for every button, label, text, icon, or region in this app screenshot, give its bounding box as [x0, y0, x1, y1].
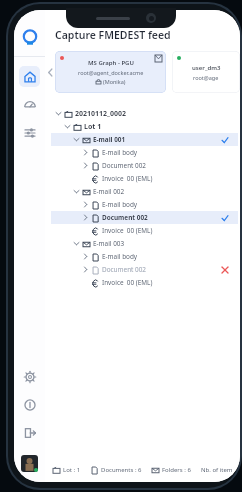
staticText: Invoice 00 (EML)	[102, 278, 153, 287]
button[interactable]: Logo	[20, 28, 40, 48]
button[interactable]: Document 002	[51, 211, 238, 224]
button[interactable]: Folders : 6	[152, 466, 191, 474]
button[interactable]: Logout	[19, 422, 40, 443]
button[interactable]: Info	[19, 394, 40, 415]
button[interactable]: E-mail 001	[51, 133, 238, 146]
button[interactable]: Document 002	[51, 263, 238, 276]
staticText: E-mail 002	[93, 187, 125, 196]
button[interactable]: Lot : 1	[53, 466, 81, 474]
button[interactable]: Home	[19, 66, 40, 87]
button[interactable]: Filters	[19, 122, 40, 143]
button[interactable]: user_dm3	[172, 51, 240, 93]
staticText: E-mail body	[102, 252, 138, 261]
button[interactable]: E-mail 002	[51, 185, 238, 198]
staticText: MS Graph - PGU	[88, 59, 134, 67]
button[interactable]: Invoice 00 (EML)	[51, 172, 238, 185]
staticText: Invoice 00 (EML)	[102, 226, 153, 235]
button[interactable]: Invoice 00 (EML)	[51, 276, 238, 289]
staticText: E-mail body	[102, 200, 138, 209]
staticText: Capture FMEDEST feed	[55, 28, 171, 42]
staticText: root@age	[193, 74, 219, 81]
button[interactable]: E-mail 003	[51, 237, 238, 250]
button[interactable]: Lot 1	[51, 120, 238, 133]
staticText: Document 002	[102, 213, 148, 222]
staticText: (Monika)	[103, 78, 126, 85]
button[interactable]: E-mail body	[51, 250, 238, 263]
staticText: user_dm3	[192, 64, 221, 72]
staticText: 20210112_0002	[75, 109, 126, 119]
staticText: Folders : 6	[162, 466, 191, 474]
staticText: E-mail 003	[93, 239, 125, 248]
staticText: Invoice 00 (EML)	[102, 174, 153, 183]
button[interactable]: E-mail body	[51, 146, 238, 159]
staticText: E-mail body	[102, 148, 138, 157]
button[interactable]: Documents : 6	[91, 466, 142, 474]
button[interactable]: 20210112_0002	[51, 107, 238, 120]
button[interactable]: Profile	[21, 455, 38, 472]
staticText: Lot : 1	[63, 466, 81, 474]
button[interactable]: E-mail body	[51, 198, 238, 211]
staticText: Documents : 6	[101, 466, 142, 474]
button[interactable]: Settings	[19, 366, 40, 387]
staticText: Document 002	[102, 161, 147, 170]
button[interactable]: Previous	[45, 50, 55, 94]
button[interactable]: MS Graph - PGU	[55, 51, 166, 93]
button[interactable]: Document 002	[51, 159, 238, 172]
staticText: root@agent_docker.acme	[78, 69, 144, 76]
button[interactable]: Dashboard	[19, 94, 40, 115]
button[interactable]: Invoice 00 (EML)	[51, 224, 238, 237]
staticText: Lot 1	[84, 122, 102, 132]
staticText: Document 002	[102, 265, 147, 274]
staticText: E-mail 001	[93, 135, 126, 144]
staticText: Nb. of item	[201, 466, 233, 474]
